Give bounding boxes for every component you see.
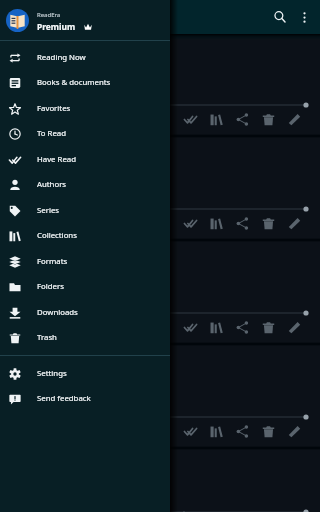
button[interactable]: Favorites xyxy=(0,95,170,121)
button[interactable]: Delete xyxy=(255,214,281,233)
staticText: Favorites xyxy=(37,103,71,114)
button[interactable]: Have read xyxy=(0,138,320,238)
button[interactable]: Delete xyxy=(255,110,281,129)
button[interactable]: Delete xyxy=(255,422,281,441)
button[interactable]: Collections xyxy=(0,223,170,248)
button[interactable]: Share xyxy=(229,214,255,233)
button[interactable]: Share xyxy=(229,110,255,129)
button[interactable]: Have read xyxy=(0,450,320,512)
staticText: Settings xyxy=(37,368,67,379)
staticText: Formats xyxy=(37,256,68,267)
staticText: Trash xyxy=(37,332,57,343)
button[interactable]: Have Read xyxy=(0,146,170,172)
button[interactable]: Trash xyxy=(0,325,170,350)
staticText: Series xyxy=(37,205,60,216)
staticText: Premium xyxy=(37,21,76,32)
button[interactable]: To Read xyxy=(0,121,170,146)
button[interactable]: Formats xyxy=(0,248,170,274)
button[interactable]: Collections xyxy=(203,422,229,441)
button[interactable]: Have read xyxy=(177,422,203,441)
button[interactable]: ReadEra xyxy=(0,0,170,40)
button[interactable]: Authors xyxy=(0,172,170,197)
button[interactable]: Search xyxy=(268,0,292,34)
button[interactable]: Have read xyxy=(0,242,320,342)
button[interactable]: Edit xyxy=(281,422,307,441)
button[interactable]: Collections xyxy=(203,110,229,129)
staticText: To Read xyxy=(37,128,66,139)
button[interactable]: Share xyxy=(229,318,255,337)
button[interactable]: Edit xyxy=(281,110,307,129)
button[interactable]: Collections xyxy=(203,318,229,337)
button[interactable]: Have read xyxy=(177,110,203,129)
staticText: Have Read xyxy=(37,154,76,165)
button[interactable]: Have read xyxy=(0,34,320,134)
button[interactable]: Collections xyxy=(203,214,229,233)
staticText: Collections xyxy=(37,230,77,241)
button[interactable]: Have read xyxy=(177,214,203,233)
button[interactable]: Share xyxy=(229,422,255,441)
button[interactable]: Downloads xyxy=(0,299,170,325)
button[interactable]: Have read xyxy=(177,318,203,337)
button[interactable]: Books & documents xyxy=(0,70,170,95)
staticText: Downloads xyxy=(37,307,78,318)
button[interactable]: Send feedback xyxy=(0,386,170,411)
button[interactable]: Reading Now xyxy=(0,44,170,70)
button[interactable]: More options xyxy=(292,0,316,34)
button[interactable]: Settings xyxy=(0,361,170,386)
staticText: Reading Now xyxy=(37,52,86,63)
staticText: Folders xyxy=(37,281,64,292)
button[interactable]: Have read xyxy=(0,346,320,446)
button[interactable]: Delete xyxy=(255,318,281,337)
staticText: Authors xyxy=(37,179,67,190)
button[interactable]: Edit xyxy=(281,318,307,337)
button[interactable]: Folders xyxy=(0,274,170,299)
staticText: Send feedback xyxy=(37,393,91,404)
button[interactable]: Series xyxy=(0,197,170,223)
staticText: ReadEra xyxy=(37,11,61,19)
staticText: Books & documents xyxy=(37,77,111,88)
button[interactable]: Edit xyxy=(281,214,307,233)
